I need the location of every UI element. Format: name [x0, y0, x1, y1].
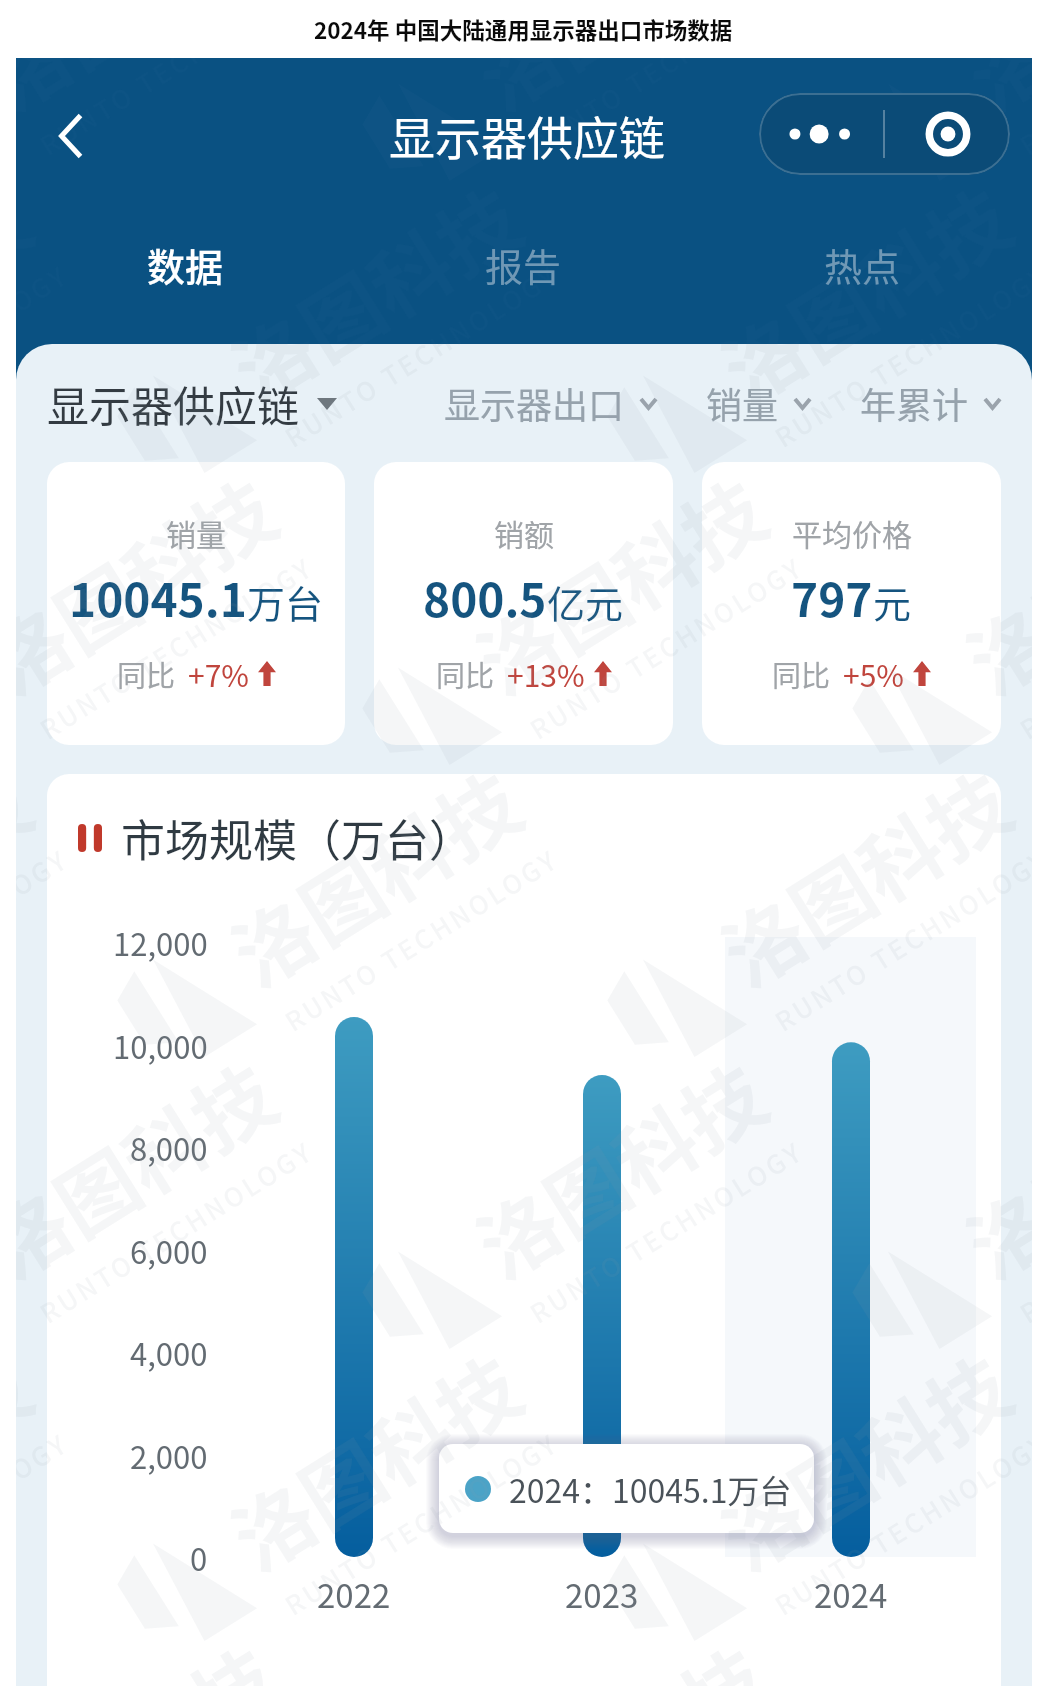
staticText: 2022 [317, 1570, 391, 1618]
button[interactable]: 数据 [16, 214, 354, 344]
button[interactable]: Close mini program [885, 93, 1010, 175]
staticText: 2024年 中国大陆通用显示器出口市场数据 [314, 13, 733, 46]
staticText: 销量 [166, 511, 226, 554]
staticText: 平均价格 [792, 511, 912, 554]
button[interactable]: Back [36, 101, 106, 171]
staticText: 10045.1 [69, 564, 247, 631]
button[interactable]: 显示器出口 [444, 377, 656, 429]
staticText: 报告 [485, 237, 562, 292]
staticText: +5% [843, 652, 904, 695]
staticText: +13% [507, 652, 585, 695]
staticText: 数据 [147, 237, 224, 292]
staticText: 2,000 [130, 1433, 208, 1477]
staticText: 年累计 [860, 377, 969, 429]
staticText: 元 [873, 574, 912, 629]
staticText: 销量 [706, 377, 779, 429]
staticText: 4,000 [130, 1330, 208, 1374]
staticText: +7% [188, 652, 249, 695]
staticText: 同比 [117, 653, 176, 695]
staticText: 6,000 [130, 1228, 208, 1272]
button[interactable]: 平均价格 [702, 462, 1001, 745]
button[interactable]: More [759, 93, 883, 175]
staticText: 销额 [494, 511, 554, 554]
button[interactable]: 销额 [374, 462, 673, 745]
staticText: 亿元 [547, 574, 624, 629]
button[interactable]: 年累计 [860, 377, 1000, 429]
button[interactable]: 2024：10045.1万台 [439, 1444, 814, 1533]
staticText: 10,000 [113, 1023, 208, 1067]
staticText: 2023 [565, 1570, 639, 1618]
staticText: 热点 [824, 237, 901, 292]
staticText: 同比 [436, 653, 495, 695]
staticText: 797 [791, 564, 873, 631]
staticText: 0 [190, 1535, 208, 1579]
staticText: 同比 [772, 653, 831, 695]
button[interactable]: 销量 [47, 462, 345, 745]
button[interactable]: 销量 [706, 377, 810, 429]
staticText: 12,000 [113, 920, 208, 964]
staticText: 800.5 [423, 564, 547, 631]
staticText: 2024 [814, 1570, 888, 1618]
staticText: 8,000 [130, 1125, 208, 1169]
button[interactable]: 报告 [354, 214, 693, 344]
staticText: 市场规模（万台） [121, 806, 473, 870]
button[interactable]: 热点 [693, 214, 1032, 344]
button[interactable]: 显示器供应链 [47, 373, 337, 434]
staticText: 万台 [247, 574, 324, 629]
staticText: 显示器出口 [444, 377, 625, 429]
staticText: 显示器供应链 [389, 102, 665, 169]
staticText: 显示器供应链 [47, 373, 300, 434]
staticText: 2024：10045.1万台 [509, 1466, 792, 1512]
